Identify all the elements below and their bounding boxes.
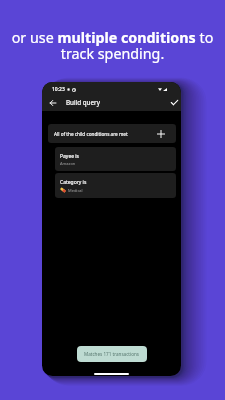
button[interactable]: All of the child conditions are met xyxy=(48,124,176,143)
staticText: Payee is xyxy=(60,153,80,160)
button[interactable]: Payee is xyxy=(55,147,176,171)
other: Add condition xyxy=(156,129,166,139)
staticText: Amazon xyxy=(60,161,76,166)
button[interactable]: Category is xyxy=(55,173,176,198)
staticText: Matches 171 transactions xyxy=(84,351,140,357)
staticText: or use multiple conditions to track spen… xyxy=(0,28,225,63)
staticText: All of the child conditions are met xyxy=(54,131,128,137)
staticText: Medical xyxy=(68,188,83,193)
button[interactable]: Matches 171 transactions xyxy=(77,346,147,362)
staticText: 10:23 xyxy=(52,86,65,93)
button[interactable]: Save query xyxy=(166,94,181,111)
staticText: Category is xyxy=(60,179,87,186)
button[interactable]: Navigate back xyxy=(44,94,61,111)
staticText: Build query xyxy=(66,98,100,107)
